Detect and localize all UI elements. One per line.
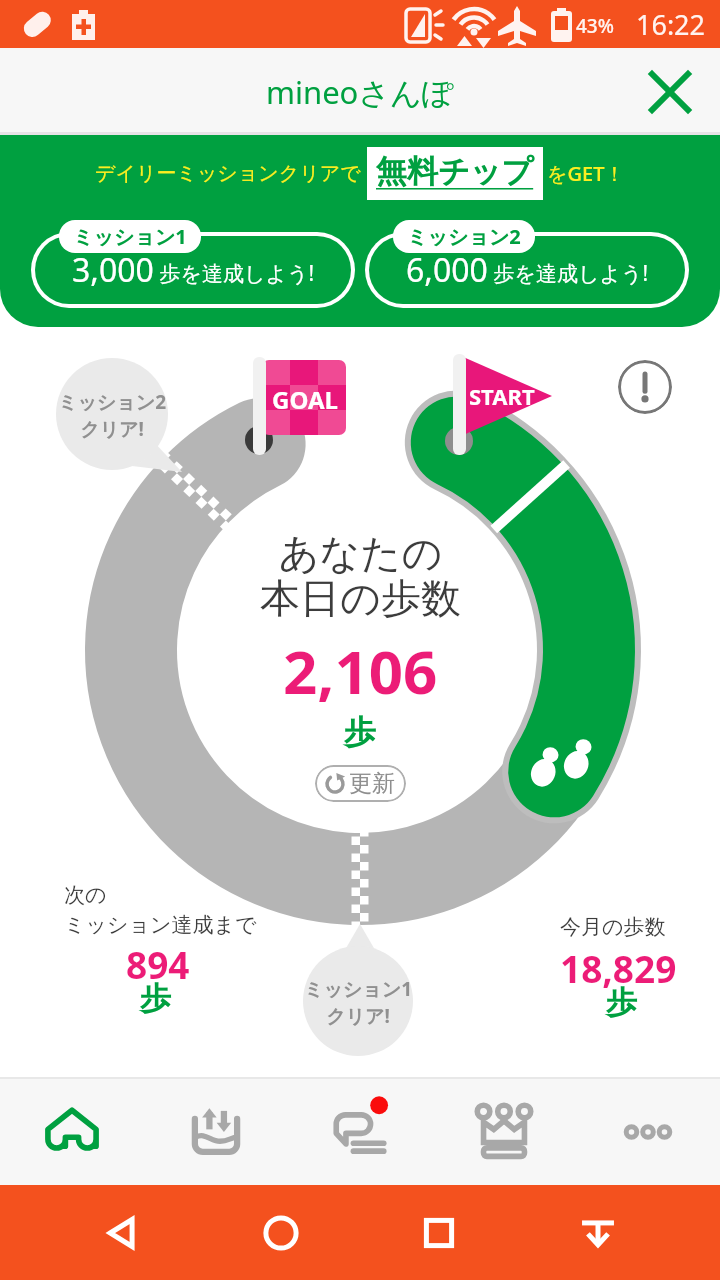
staticText: 18,829 (560, 943, 677, 993)
staticText: 次の ミッション達成まで (64, 882, 257, 939)
staticText: デイリーミッションクリアで (95, 161, 361, 186)
staticText: 歩 (140, 979, 171, 1018)
staticText: 歩 (344, 712, 376, 752)
button[interactable]: Recents (403, 1197, 475, 1269)
button[interactable]: Close (640, 62, 700, 122)
button[interactable]: Home (0, 1079, 144, 1185)
button[interactable]: Hide keyboard (562, 1197, 634, 1269)
button[interactable]: 3,000 (35, 236, 351, 304)
staticText: ミッション1 (73, 223, 187, 250)
staticText: 無料チップ (376, 152, 534, 191)
staticText: ミッション2 (407, 223, 521, 250)
staticText: 894 (126, 939, 190, 989)
staticText: mineoさんぽ (266, 71, 454, 113)
staticText: ミッション1 クリア! (298, 976, 418, 1029)
button[interactable]: 更新 (315, 765, 406, 802)
staticText: 2,106 (283, 630, 438, 712)
button[interactable]: Back (86, 1197, 158, 1269)
staticText: をGET！ (547, 160, 625, 187)
staticText: START (469, 381, 535, 411)
staticText: 3,000 (72, 248, 154, 292)
button[interactable]: More (576, 1079, 720, 1185)
staticText: 歩を達成しよう! (154, 259, 315, 288)
staticText: GOAL (272, 383, 338, 416)
staticText: ミッション2 クリア! (52, 389, 172, 442)
staticText: 歩を達成しよう! (488, 259, 649, 288)
staticText: 今月の歩数 (560, 914, 666, 940)
button[interactable]: Rewards (432, 1079, 576, 1185)
button[interactable]: Data transfer (144, 1079, 288, 1185)
staticText: 更新 (349, 769, 395, 798)
button[interactable]: Info (618, 360, 672, 414)
staticText: あなたの 本日の歩数 (260, 528, 461, 624)
staticText: 16:22 (636, 6, 706, 43)
staticText: 43% (576, 13, 614, 39)
button[interactable]: Messages (288, 1079, 432, 1185)
button[interactable]: 無料チップ (367, 147, 543, 200)
button[interactable]: 6,000 (369, 236, 685, 304)
staticText: 6,000 (406, 248, 488, 292)
button[interactable]: Home (245, 1197, 317, 1269)
staticText: 歩 (606, 983, 637, 1022)
